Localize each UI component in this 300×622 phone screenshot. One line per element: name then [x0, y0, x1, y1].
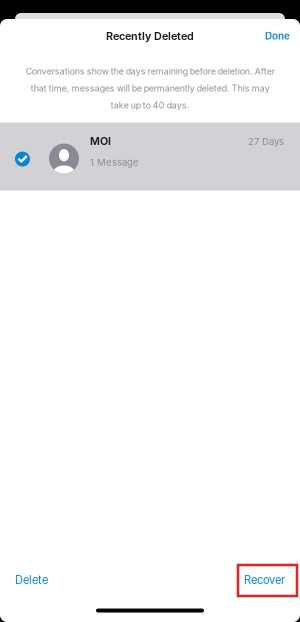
staticText: 27 Days	[248, 136, 284, 147]
button[interactable]: Delete	[3, 564, 60, 596]
button[interactable]: MOI	[0, 122, 300, 190]
staticText: Done	[265, 30, 290, 42]
staticText: Recently Deleted	[106, 29, 194, 43]
staticText: 1 Message	[90, 156, 139, 168]
staticText: MOI	[90, 134, 111, 147]
staticText: Recover	[244, 573, 285, 587]
staticText: Delete	[15, 573, 48, 587]
button[interactable]: Recover	[232, 564, 297, 596]
button[interactable]: Done	[255, 24, 300, 48]
staticText: Conversations show the days remaining be…	[25, 66, 274, 110]
